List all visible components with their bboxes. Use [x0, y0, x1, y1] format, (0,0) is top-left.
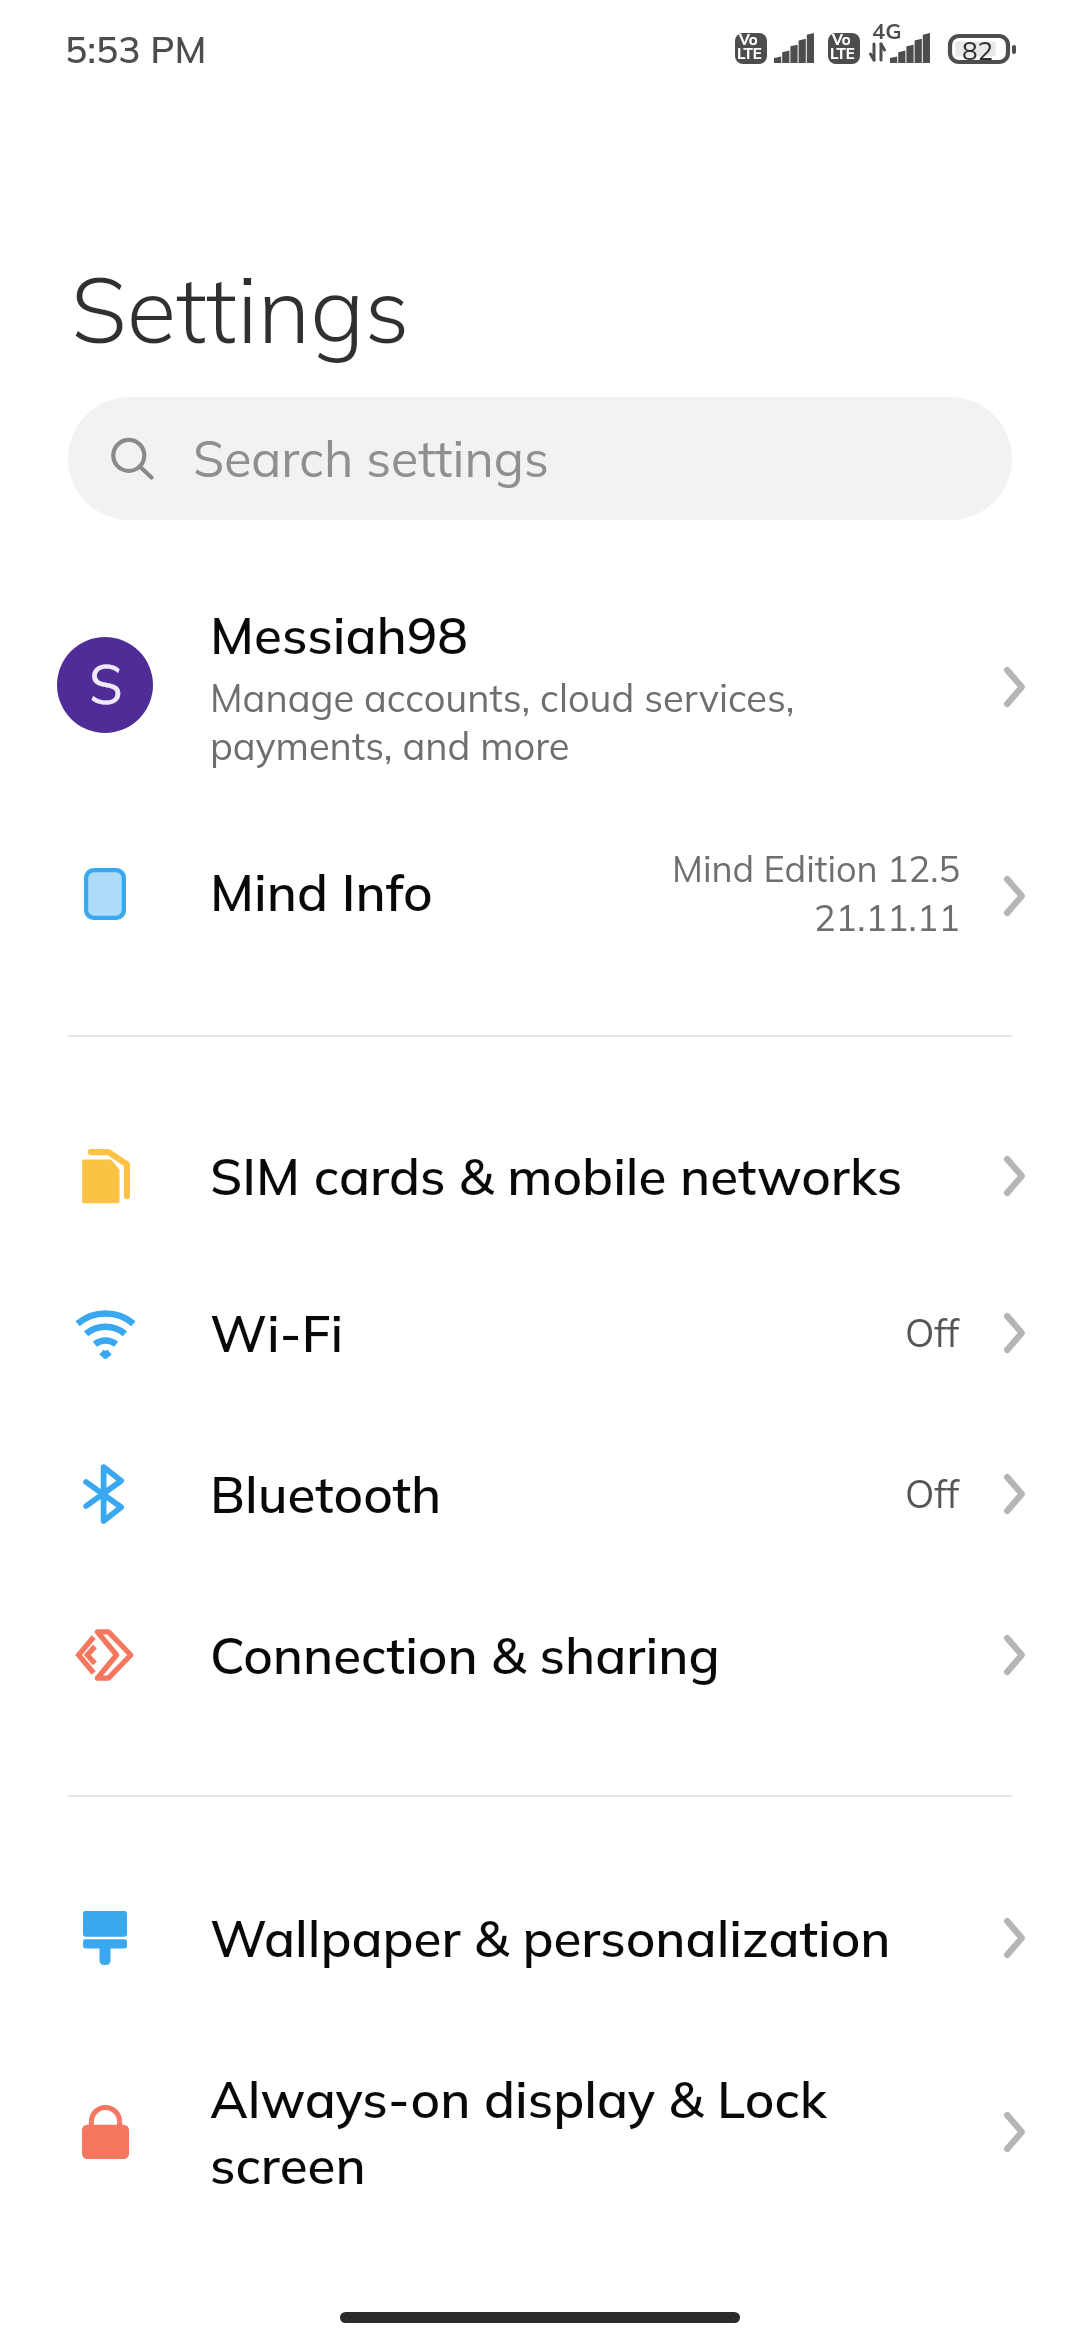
button[interactable]: Connection & sharing	[0, 1580, 1080, 1730]
staticText: S	[89, 650, 123, 718]
staticText: Search settings	[193, 427, 549, 490]
button[interactable]: Search settings	[68, 397, 1012, 520]
button[interactable]: Wallpaper & personalization	[0, 1863, 1080, 2013]
staticText: Messiah98	[210, 603, 468, 667]
staticText: Mind Edition 12.5 21.11.11	[600, 846, 960, 940]
staticText: Connection & sharing	[210, 1623, 984, 1687]
staticText: Always-on display & Lock screen	[210, 2067, 984, 2197]
staticText: LTE	[737, 44, 762, 63]
staticText: Vo	[832, 30, 851, 49]
staticText: 82	[962, 34, 994, 64]
staticText: LTE	[830, 44, 855, 63]
staticText: 4G	[872, 17, 902, 45]
staticText: Wi-Fi	[210, 1301, 905, 1365]
button[interactable]: Always-on display & Lock screen	[0, 2057, 1080, 2207]
staticText: Off	[905, 1470, 960, 1518]
button[interactable]: Wi-Fi	[0, 1258, 1080, 1408]
button[interactable]: SIM cards & mobile networks	[0, 1101, 1080, 1251]
staticText: Off	[905, 1309, 960, 1357]
staticText: Bluetooth	[210, 1462, 905, 1526]
staticText: Wallpaper & personalization	[210, 1906, 984, 1970]
button[interactable]: Bluetooth	[0, 1419, 1080, 1569]
button[interactable]: Mind Info	[0, 820, 1080, 970]
staticText: 5:53 PM	[65, 26, 207, 72]
staticText: SIM cards & mobile networks	[210, 1144, 984, 1208]
button[interactable]: S	[0, 596, 1080, 776]
staticText: Manage accounts, cloud services, payment…	[210, 674, 795, 770]
staticText: Settings	[71, 252, 410, 366]
staticText: Mind Info	[210, 860, 433, 924]
staticText: Vo	[739, 30, 758, 49]
